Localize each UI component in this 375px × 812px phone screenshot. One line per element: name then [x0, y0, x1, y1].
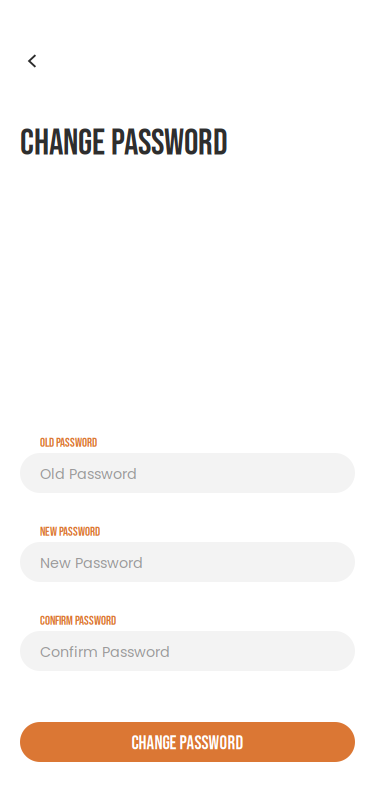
staticText: New Password: [40, 553, 143, 573]
staticText: Old Password: [40, 464, 137, 484]
staticText: Confirm Password: [40, 642, 170, 662]
staticText: NEW PASSWORD: [40, 524, 100, 540]
button[interactable]: CHANGE PASSWORD: [20, 722, 355, 762]
staticText: CONFIRM PASSWORD: [40, 613, 116, 629]
staticText: OLD PASSWORD: [40, 435, 97, 451]
button[interactable]: New Password: [20, 542, 355, 582]
button[interactable]: Back: [16, 43, 60, 79]
staticText: CHANGE PASSWORD: [131, 732, 243, 755]
button[interactable]: Confirm Password: [20, 631, 355, 671]
button[interactable]: Old Password: [20, 453, 355, 493]
staticText: CHANGE PASSWORD: [20, 122, 228, 165]
